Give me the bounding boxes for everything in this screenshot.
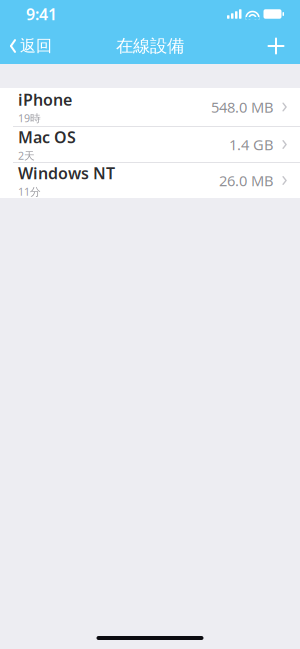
- button[interactable]: 返回: [0, 28, 60, 64]
- staticText: 26.0 MB: [219, 171, 274, 190]
- button[interactable]: iPhone: [0, 88, 300, 126]
- staticText: 548.0 MB: [211, 97, 274, 117]
- staticText: iPhone: [18, 89, 72, 110]
- staticText: 2天: [18, 148, 35, 163]
- staticText: 19時: [18, 111, 41, 125]
- staticText: 1.4 GB: [229, 135, 274, 154]
- staticText: Mac OS: [18, 126, 76, 147]
- staticText: 返回: [20, 36, 52, 56]
- button[interactable]: Mac OS: [0, 126, 300, 162]
- staticText: Windows NT: [18, 162, 115, 183]
- staticText: 11分: [18, 184, 41, 199]
- button[interactable]: Windows NT: [0, 162, 300, 198]
- staticText: 在線設備: [116, 35, 184, 57]
- staticText: 9:41: [26, 3, 57, 25]
- button[interactable]: Add device: [258, 28, 294, 64]
